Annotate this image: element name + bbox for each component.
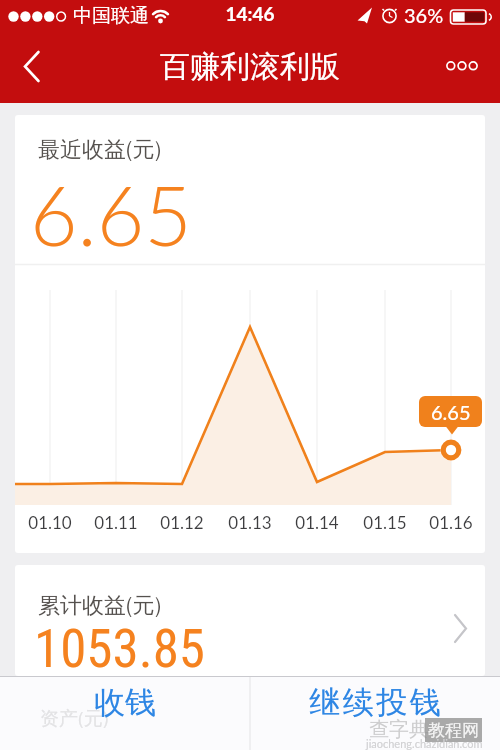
staticText: 累计收益(元) (38, 592, 162, 620)
staticText: 14:46 (200, 2, 300, 25)
staticText: 01.11 (83, 512, 149, 532)
button[interactable]: 继续投钱 (250, 674, 500, 731)
staticText: 资产(元) (40, 707, 109, 731)
staticText: 百赚利滚利版 (0, 48, 500, 86)
staticText: jiaocheng.chazidian.com (366, 737, 483, 750)
button[interactable]: 收钱 (0, 674, 250, 731)
staticText: 01.14 (284, 512, 350, 532)
button[interactable] (24, 46, 64, 86)
staticText: 最近收益(元) (38, 136, 162, 164)
staticText: 1053.85 (34, 618, 205, 680)
staticText: 6.65 (431, 400, 471, 424)
staticText: 6.65 (30, 165, 192, 263)
staticText: 继续投钱 (308, 683, 442, 722)
staticText: 01.12 (149, 512, 215, 532)
staticText: 中国联通 (73, 4, 149, 28)
staticText: 01.10 (17, 512, 83, 532)
staticText: 01.15 (352, 512, 418, 532)
staticText: 01.13 (217, 512, 283, 532)
staticText: 36% (404, 3, 444, 27)
staticText: 查字典 (369, 717, 429, 742)
button[interactable] (440, 50, 485, 82)
staticText: 收钱 (94, 683, 156, 722)
button[interactable] (15, 565, 485, 676)
staticText: 01.16 (418, 512, 484, 532)
staticText: 教程网 (428, 720, 479, 741)
